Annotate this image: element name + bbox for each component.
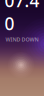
- staticText: WIND DOWN: [5, 36, 38, 43]
- staticText: 07:40: [4, 0, 39, 35]
